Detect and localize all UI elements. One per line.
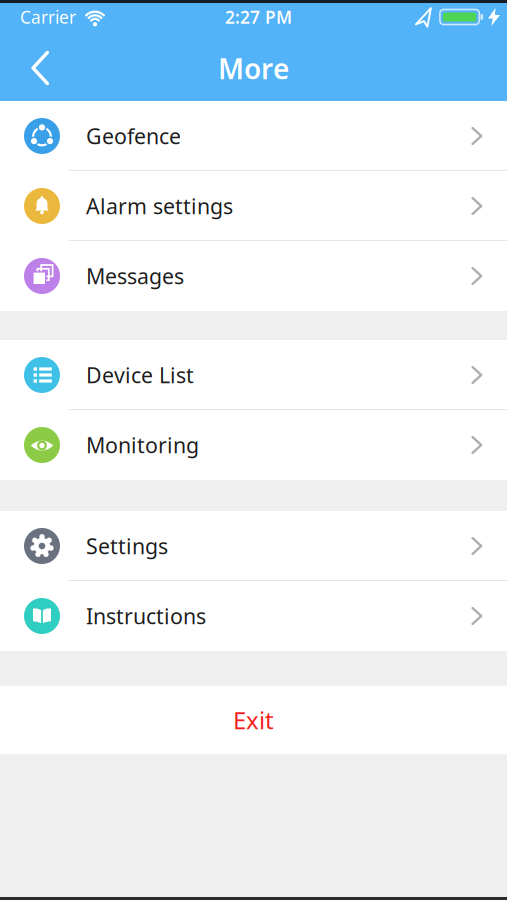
staticText: Messages (86, 262, 184, 290)
staticText: Device List (86, 361, 194, 389)
button[interactable]: Monitoring (0, 410, 507, 480)
button[interactable]: Geofence (0, 101, 507, 171)
staticText: Instructions (86, 602, 206, 630)
button[interactable]: Exit (0, 686, 507, 754)
button[interactable]: Alarm settings (0, 171, 507, 241)
button[interactable]: Settings (0, 511, 507, 581)
staticText: Geofence (86, 122, 181, 150)
button[interactable]: Back (0, 46, 64, 85)
staticText: Monitoring (86, 431, 199, 459)
button[interactable]: Messages (0, 241, 507, 311)
staticText: Settings (86, 532, 168, 560)
staticText: 2:27 PM (225, 5, 292, 28)
button[interactable]: Instructions (0, 581, 507, 651)
staticText: Carrier (20, 5, 76, 28)
button[interactable]: Device List (0, 340, 507, 410)
staticText: More (218, 50, 289, 87)
staticText: Alarm settings (86, 192, 233, 220)
staticText: Exit (233, 704, 274, 736)
